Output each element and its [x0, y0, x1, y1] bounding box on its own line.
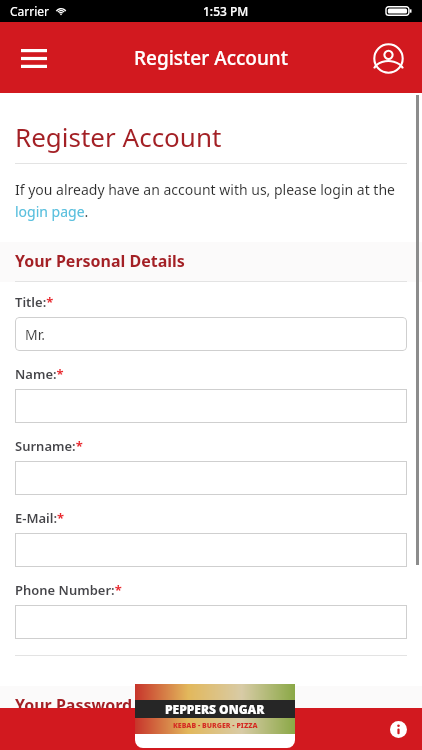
staticText: PEPPERS ONGAR — [165, 701, 265, 717]
button[interactable] — [15, 389, 407, 423]
staticText: Your Password — [15, 694, 133, 708]
staticText: Mr. — [25, 325, 45, 344]
button[interactable]: Advertisement — [135, 670, 295, 748]
button[interactable] — [15, 605, 407, 639]
button[interactable]: Ad information — [380, 711, 416, 747]
staticText: Title:* — [15, 293, 54, 311]
button[interactable]: Mr. — [15, 317, 407, 351]
staticText: Name:* — [15, 365, 64, 383]
staticText: Register Account — [15, 119, 222, 154]
staticText: Phone Number:* — [15, 581, 122, 599]
staticText: E-Mail:* — [15, 509, 65, 527]
staticText: Your Personal Details — [15, 250, 185, 272]
staticText: Register Account — [134, 45, 289, 71]
staticText: KEBAB - BURGER - PIZZA — [173, 721, 258, 731]
staticText: If you already have an account with us, … — [15, 180, 407, 221]
staticText: Carrier — [10, 3, 50, 19]
button[interactable] — [15, 461, 407, 495]
button[interactable] — [15, 533, 407, 567]
button[interactable]: Account — [362, 32, 414, 84]
button[interactable]: Menu — [8, 32, 60, 84]
staticText: 1:53 PM — [203, 3, 249, 19]
staticText: Surname:* — [15, 437, 83, 455]
